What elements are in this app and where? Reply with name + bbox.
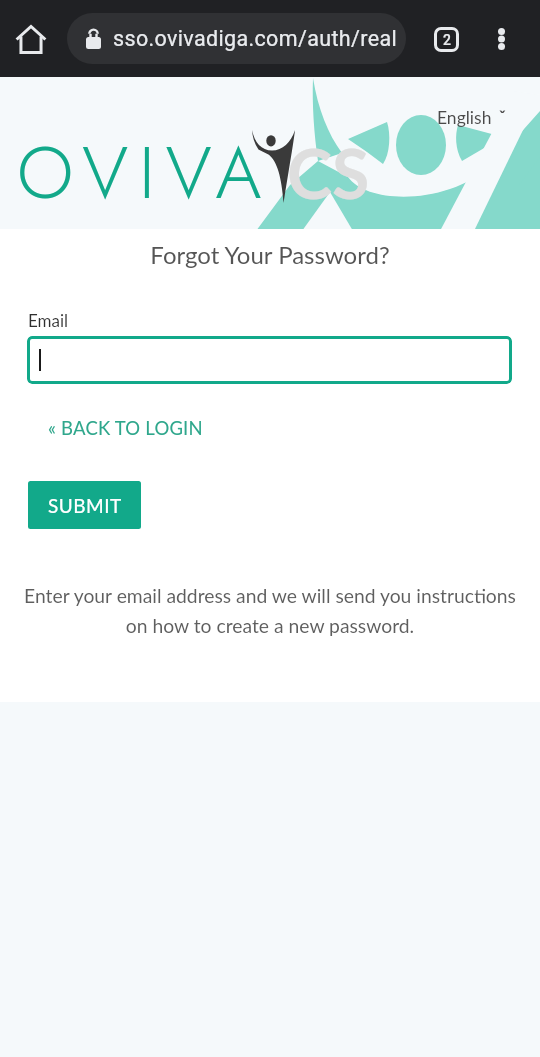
staticText: SUBMIT <box>48 494 122 517</box>
button[interactable]: SUBMIT <box>28 481 141 529</box>
button[interactable]: « BACK TO LOGIN <box>42 411 209 445</box>
button[interactable]: English <box>437 107 506 128</box>
button[interactable]: Home <box>5 13 57 65</box>
staticText: « BACK TO LOGIN <box>48 417 203 439</box>
button[interactable]: sso.ovivadiga.com/auth/real <box>67 13 406 64</box>
staticText: Enter your email address and we will sen… <box>14 584 526 637</box>
staticText: CS <box>287 132 370 214</box>
button[interactable]: Tabs <box>422 15 470 63</box>
staticText: OVIVA <box>17 121 273 225</box>
button[interactable]: More options <box>477 15 525 63</box>
button[interactable] <box>27 336 512 384</box>
staticText: 2 <box>443 32 451 48</box>
staticText: Email <box>28 310 69 330</box>
staticText: ˇ <box>499 106 506 126</box>
staticText: Forgot Your Password? <box>0 240 540 269</box>
staticText: sso.ovivadiga.com/auth/real <box>113 26 398 51</box>
staticText: English <box>437 107 492 128</box>
